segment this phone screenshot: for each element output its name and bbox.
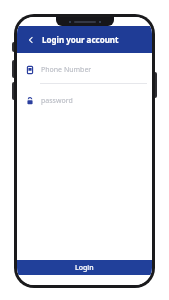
- staticText: Phone Number: [41, 65, 92, 75]
- button[interactable]: Login: [17, 260, 152, 275]
- button[interactable]: Password field: [17, 93, 152, 109]
- button[interactable]: Phone number field: [17, 62, 152, 78]
- staticText: Login: [75, 263, 94, 273]
- button[interactable]: Back: [23, 32, 39, 48]
- staticText: Login your account: [42, 34, 119, 45]
- staticText: password: [41, 96, 73, 106]
